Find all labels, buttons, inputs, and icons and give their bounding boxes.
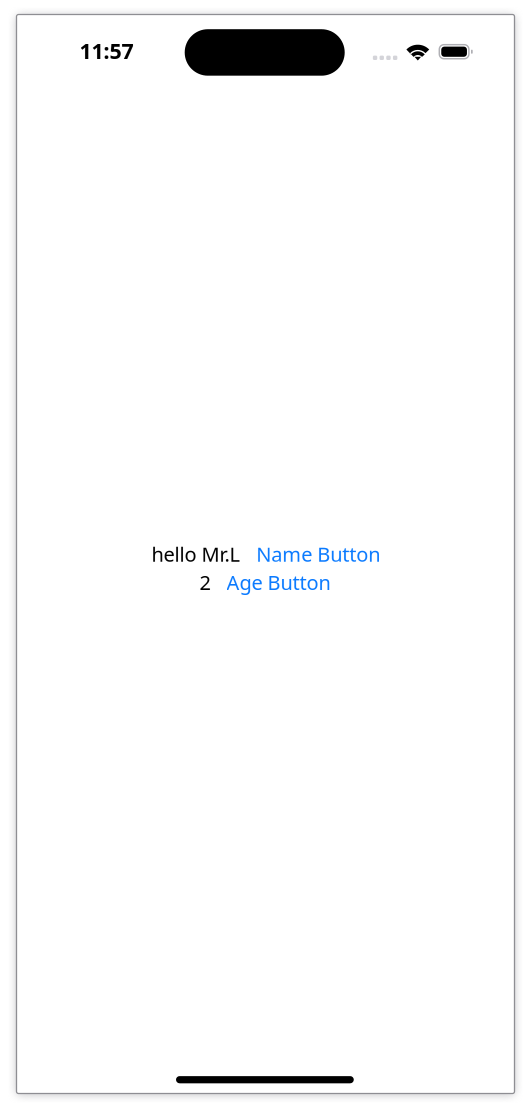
staticText: hello Mr.L xyxy=(151,540,239,567)
staticText: Name Button xyxy=(256,540,380,567)
staticText: Age Button xyxy=(227,568,331,596)
staticText: 11:57 xyxy=(80,36,134,65)
button[interactable]: Name Button xyxy=(256,540,380,567)
button[interactable]: Age Button xyxy=(227,568,331,596)
staticText: 2 xyxy=(200,568,211,596)
